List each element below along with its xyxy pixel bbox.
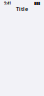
staticText: Title [16, 5, 28, 13]
staticText: 9:41 [4, 0, 11, 6]
staticText: ▮▮▮ [34, 1, 40, 5]
